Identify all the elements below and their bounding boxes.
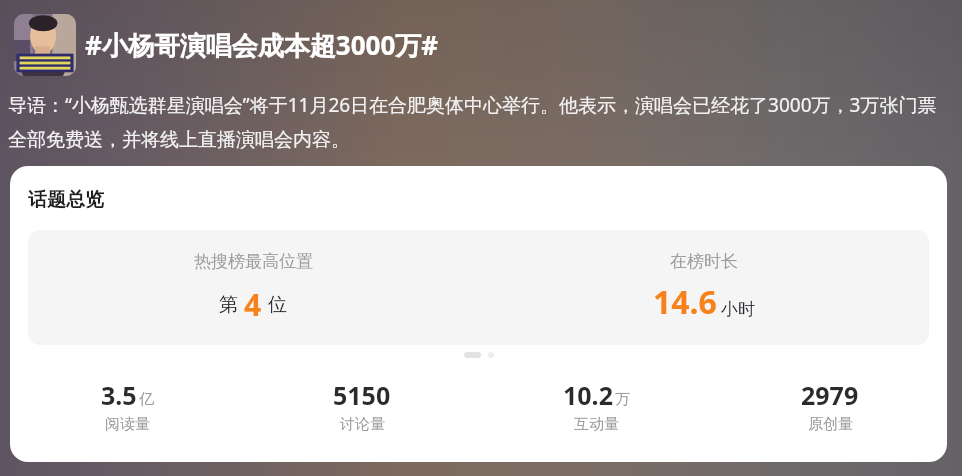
staticText: 3.5 bbox=[101, 378, 137, 412]
staticText: 第 bbox=[219, 293, 238, 317]
staticText: 导语：“小杨甄选群星演唱会”将于11月26日在合肥奥体中心举行。他表示，演唱会已… bbox=[8, 92, 954, 152]
staticText: 小时 bbox=[721, 299, 755, 320]
staticText: 位 bbox=[268, 293, 287, 317]
button[interactable]: Topic thumbnail bbox=[14, 14, 948, 76]
button[interactable]: 2979 bbox=[713, 378, 947, 434]
staticText: 在榜时长 bbox=[670, 251, 738, 272]
staticText: 5150 bbox=[333, 378, 391, 412]
staticText: 阅读量 bbox=[105, 415, 150, 434]
staticText: 10.2 bbox=[563, 378, 613, 412]
staticText: 互动量 bbox=[574, 415, 619, 434]
button[interactable]: 热搜榜最高位置 bbox=[28, 230, 929, 345]
staticText: #小杨哥演唱会成本超3000万# bbox=[85, 27, 439, 63]
staticText: 热搜榜最高位置 bbox=[194, 251, 313, 272]
staticText: 14.6 bbox=[653, 280, 717, 324]
staticText: 讨论量 bbox=[340, 415, 385, 434]
staticText: 万 bbox=[615, 390, 630, 409]
other: Topic thumbnail bbox=[14, 14, 76, 76]
button[interactable]: 10.2 bbox=[479, 378, 713, 434]
staticText: 4 bbox=[244, 284, 262, 325]
button[interactable]: 3.5 bbox=[10, 378, 245, 434]
staticText: 2979 bbox=[801, 378, 859, 412]
staticText: 话题总览 bbox=[28, 188, 104, 212]
staticText: 原创量 bbox=[808, 415, 853, 434]
button[interactable]: 5150 bbox=[245, 378, 479, 434]
staticText: 亿 bbox=[139, 390, 154, 409]
